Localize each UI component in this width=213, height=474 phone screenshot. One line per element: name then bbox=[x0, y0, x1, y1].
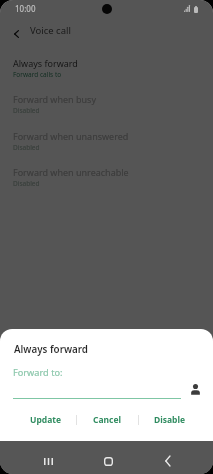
staticText: Disabled bbox=[13, 143, 40, 152]
button[interactable]: Disable bbox=[139, 409, 200, 431]
button[interactable]: Always forward bbox=[0, 57, 213, 94]
staticText: Forward calls to bbox=[13, 70, 62, 79]
button[interactable]: Select contact bbox=[188, 382, 202, 396]
button[interactable]: Update bbox=[15, 409, 76, 431]
staticText: Forward when unanswered bbox=[13, 130, 129, 142]
staticText: Voice call bbox=[30, 24, 71, 37]
button[interactable]: Navigate up bbox=[5, 22, 28, 45]
staticText: Always forward bbox=[13, 57, 78, 69]
staticText: Always forward bbox=[14, 343, 88, 356]
button[interactable]: Forward when busy bbox=[0, 93, 213, 130]
staticText: Forward when busy bbox=[13, 93, 96, 105]
button[interactable]: Home bbox=[94, 453, 122, 469]
button[interactable]: Back bbox=[153, 453, 181, 469]
staticText: Forward when unreachable bbox=[13, 166, 129, 178]
staticText: Disable bbox=[154, 414, 186, 426]
button[interactable]: Cancel bbox=[77, 409, 138, 431]
button[interactable]: Forward when unanswered bbox=[0, 130, 213, 167]
staticText: Disabled bbox=[13, 106, 40, 115]
staticText: 10:00 bbox=[15, 3, 36, 14]
staticText: Forward to: bbox=[13, 366, 63, 379]
button[interactable]: Forward when unreachable bbox=[0, 166, 213, 203]
staticText: Cancel bbox=[93, 414, 122, 426]
button[interactable]: Recent apps bbox=[34, 453, 62, 469]
staticText: Update bbox=[30, 414, 62, 426]
staticText: Disabled bbox=[13, 179, 40, 188]
